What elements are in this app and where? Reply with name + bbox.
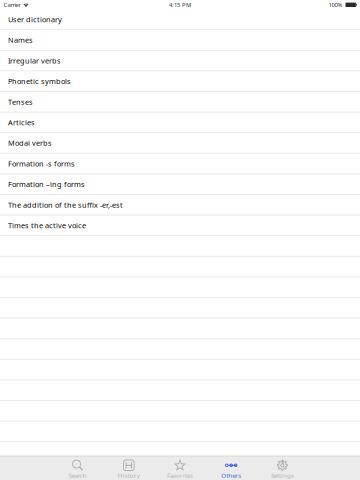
staticText: User dictionary: [8, 14, 62, 24]
button[interactable]: Modal verbs: [0, 133, 360, 154]
button[interactable]: Favorites: [154, 456, 206, 480]
staticText: History: [118, 471, 140, 479]
button[interactable]: Names: [0, 30, 360, 51]
button[interactable]: Search: [52, 456, 103, 480]
button[interactable]: [0, 401, 360, 422]
button[interactable]: Others: [206, 456, 257, 480]
staticText: Search: [69, 471, 87, 479]
button[interactable]: Formation –ing forms: [0, 174, 360, 195]
button[interactable]: Articles: [0, 113, 360, 133]
staticText: Others: [221, 471, 241, 479]
button[interactable]: [0, 380, 360, 401]
button[interactable]: [0, 422, 360, 442]
staticText: Names: [8, 35, 33, 45]
button[interactable]: [0, 236, 360, 257]
button[interactable]: [0, 319, 360, 339]
staticText: 4:15 PM: [169, 1, 191, 9]
button[interactable]: Times the active voice: [0, 216, 360, 236]
button[interactable]: [0, 277, 360, 298]
staticText: The addition of the suffix -er,-est: [8, 200, 123, 210]
staticText: Articles: [8, 117, 35, 127]
button[interactable]: [0, 298, 360, 319]
staticText: Carrier: [3, 1, 20, 9]
staticText: Times the active voice: [8, 220, 86, 230]
staticText: Settings: [271, 471, 294, 479]
button[interactable]: Tenses: [0, 92, 360, 113]
button[interactable]: Phonetic symbols: [0, 71, 360, 92]
button[interactable]: Formation -s forms: [0, 154, 360, 174]
staticText: Irregular verbs: [8, 56, 61, 66]
button[interactable]: [0, 339, 360, 360]
staticText: Formation –ing forms: [8, 179, 85, 189]
staticText: Phonetic symbols: [8, 76, 71, 86]
button[interactable]: Irregular verbs: [0, 51, 360, 71]
staticText: 100%: [328, 1, 342, 9]
staticText: Favorites: [167, 471, 193, 479]
staticText: Formation -s forms: [8, 159, 75, 169]
staticText: Tenses: [8, 97, 33, 107]
button[interactable]: User dictionary: [0, 10, 360, 30]
button[interactable]: The addition of the suffix -er,-est: [0, 195, 360, 216]
button[interactable]: Settings: [257, 456, 308, 480]
staticText: Modal verbs: [8, 138, 52, 148]
button[interactable]: History: [103, 456, 154, 480]
